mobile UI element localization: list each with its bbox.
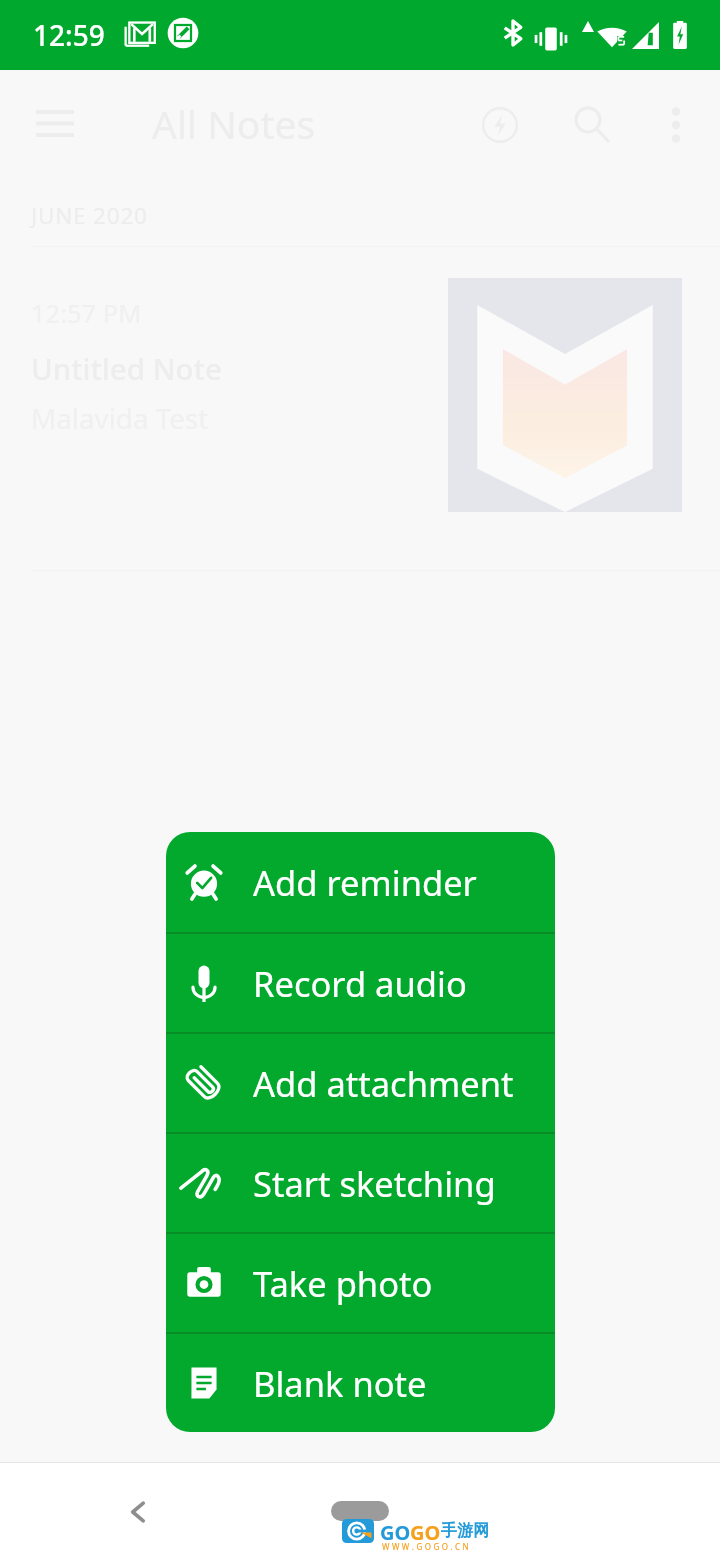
button[interactable]: Start sketching — [166, 1134, 555, 1232]
button[interactable]: Add attachment — [166, 1034, 555, 1132]
staticText: Add attachment — [253, 1060, 514, 1107]
button[interactable]: Blank note — [166, 1334, 555, 1432]
button[interactable]: Back — [102, 1476, 174, 1548]
button[interactable]: 12:57 PM — [0, 247, 720, 570]
staticText: Take photo — [253, 1260, 433, 1307]
button[interactable]: Add reminder — [166, 832, 555, 932]
staticText: Untitled Note — [31, 348, 222, 388]
staticText: Add reminder — [253, 859, 477, 906]
staticText: 12:59 — [33, 16, 105, 54]
staticText: W W W . G O G O . C N — [382, 1541, 469, 1552]
staticText: All Notes — [152, 97, 316, 150]
button[interactable]: Home — [331, 1501, 389, 1521]
staticText: GO — [410, 1519, 441, 1546]
button[interactable]: Record audio — [166, 934, 555, 1032]
button[interactable]: Take photo — [166, 1234, 555, 1332]
staticText: JUNE 2020 — [31, 200, 148, 231]
staticText: GO — [380, 1519, 411, 1546]
staticText: Record audio — [253, 960, 467, 1007]
staticText: 手游网 — [441, 1521, 489, 1541]
staticText: Blank note — [253, 1360, 427, 1407]
staticText: Start sketching — [253, 1160, 496, 1207]
